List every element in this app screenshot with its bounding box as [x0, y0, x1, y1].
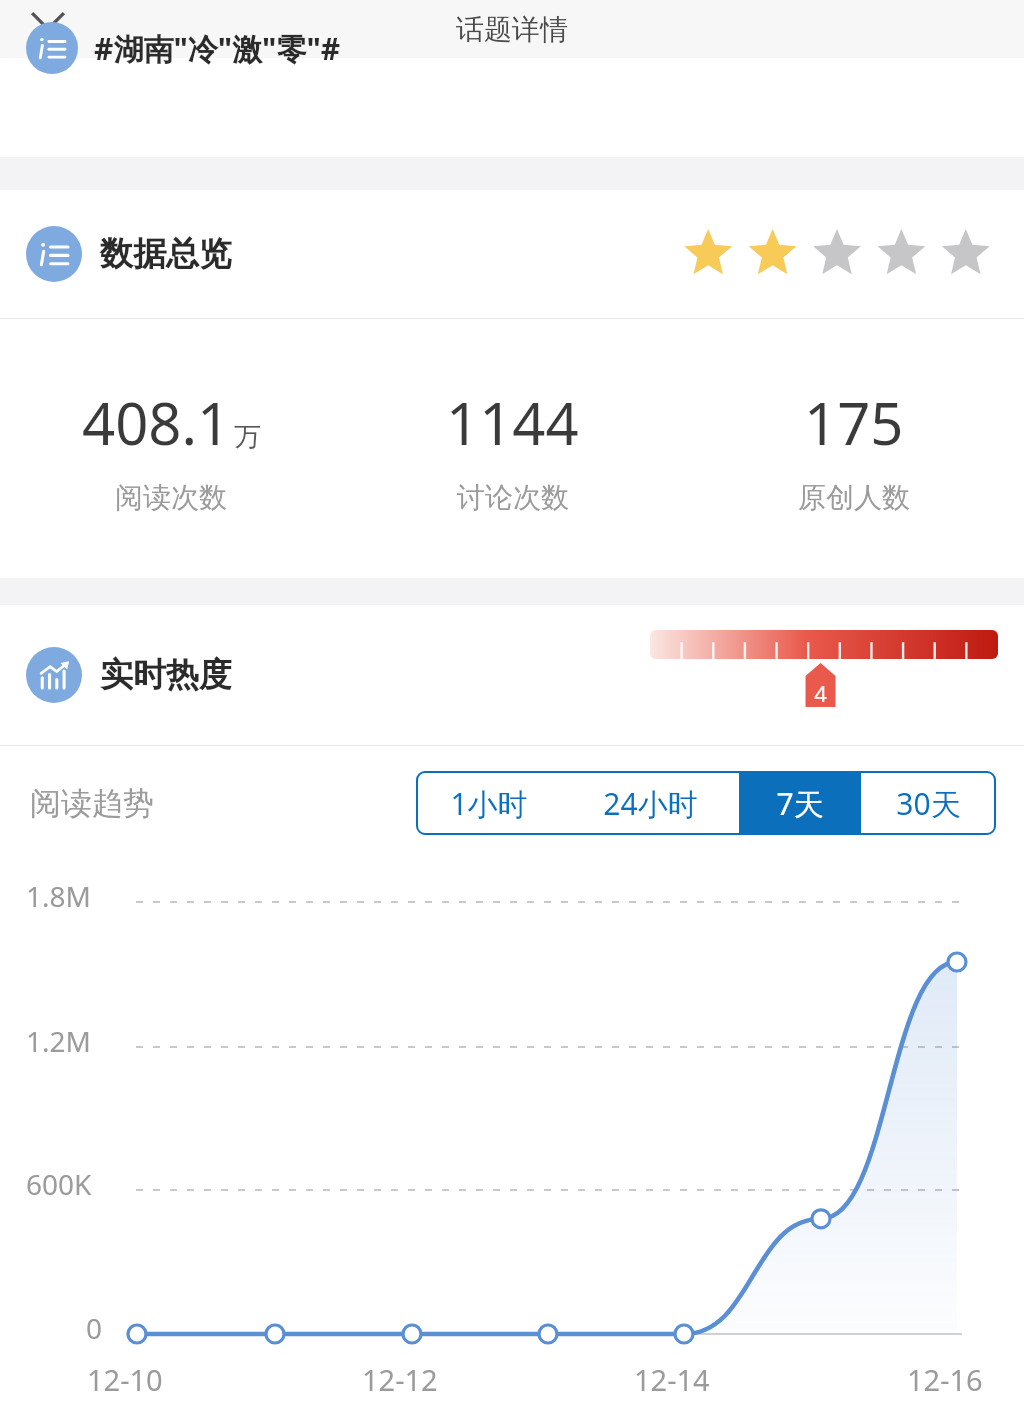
staticText: 12-12 [362, 1360, 438, 1399]
staticText: 24小时 [603, 783, 698, 824]
staticText: 阅读趋势 [30, 784, 154, 823]
button[interactable]: 24小时 [562, 771, 739, 835]
staticText: 30天 [896, 783, 961, 824]
button[interactable]: 7天 [739, 771, 861, 835]
button[interactable]: 1小时 [416, 771, 562, 835]
button[interactable]: 30天 [861, 771, 996, 835]
button[interactable]: 1144 [342, 319, 683, 578]
staticText: #湖南"冷"激"零"# [94, 28, 341, 69]
staticText: 话题详情 [456, 12, 568, 47]
staticText: 实时热度 [100, 654, 232, 696]
staticText: 408.1 [82, 383, 231, 462]
staticText: 12-14 [634, 1360, 710, 1399]
staticText: 0 [86, 1309, 103, 1347]
staticText: 讨论次数 [457, 480, 569, 515]
staticText: 12-16 [907, 1360, 983, 1399]
button[interactable]: 408.1 [0, 319, 342, 578]
staticText: 600K [26, 1165, 92, 1203]
staticText: 1小时 [450, 783, 528, 824]
staticText: 1.2M [26, 1022, 91, 1060]
staticText: 原创人数 [798, 480, 910, 515]
staticText: 12-10 [87, 1360, 163, 1399]
button[interactable]: 实时热度 [26, 605, 998, 745]
staticText: 万 [234, 420, 261, 454]
button[interactable]: #湖南"冷"激"零"# [0, 58, 1024, 157]
button[interactable]: Close [22, 3, 74, 55]
button[interactable]: 数据总览 [26, 190, 998, 318]
staticText: 175 [804, 383, 904, 462]
staticText: 1144 [446, 383, 579, 462]
staticText: 7天 [776, 783, 824, 824]
button[interactable]: 4 [650, 630, 998, 720]
staticText: 1.8M [26, 877, 91, 915]
staticText: 4 [814, 678, 827, 708]
button[interactable]: 175 [683, 319, 1024, 578]
staticText: 阅读次数 [115, 480, 227, 515]
staticText: 数据总览 [100, 233, 232, 275]
